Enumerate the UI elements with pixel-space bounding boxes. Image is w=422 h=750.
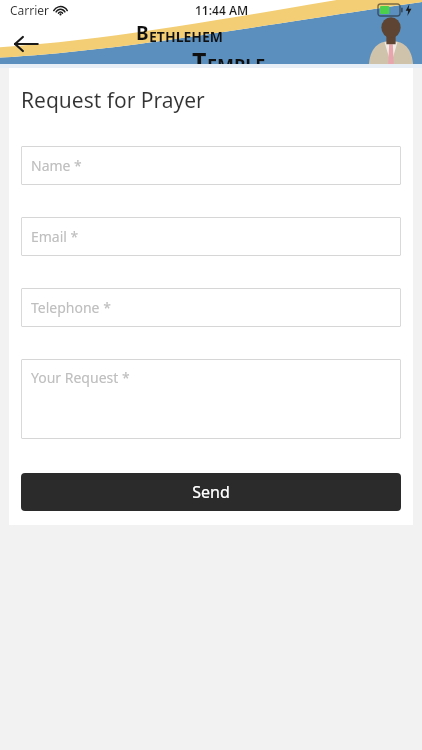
staticText: Carrier: [10, 2, 50, 18]
button[interactable]: Send: [21, 473, 401, 511]
button[interactable]: Email *: [21, 217, 401, 256]
staticText: ETHLEHEM: [149, 27, 224, 46]
button[interactable]: Back: [6, 24, 46, 64]
button[interactable]: Telephone *: [21, 288, 401, 327]
staticText: Your Request *: [31, 368, 130, 387]
staticText: Name *: [31, 156, 82, 175]
staticText: B: [136, 20, 149, 46]
button[interactable]: Your Request *: [21, 359, 401, 439]
staticText: EMPLE: [207, 53, 266, 78]
staticText: Send: [192, 481, 230, 503]
staticText: Request for Prayer: [21, 86, 205, 115]
staticText: Email *: [31, 227, 79, 246]
staticText: T: [192, 44, 207, 78]
button[interactable]: Name *: [21, 146, 401, 185]
staticText: 11:44 AM: [195, 2, 249, 18]
staticText: Telephone *: [31, 298, 111, 317]
